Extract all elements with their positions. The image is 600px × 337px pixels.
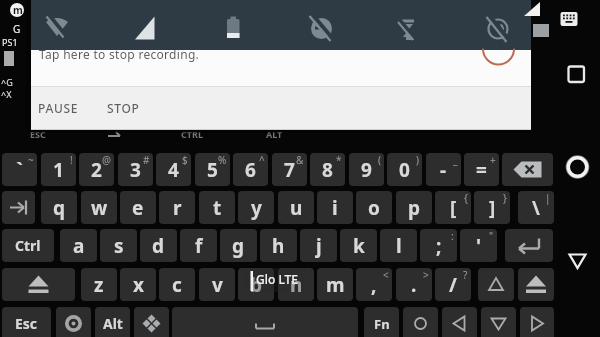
- button[interactable]: [478, 268, 514, 301]
- button[interactable]: \: [518, 191, 554, 224]
- button[interactable]: [172, 307, 358, 337]
- button[interactable]: [: [435, 191, 471, 224]
- button[interactable]: 8: [310, 153, 345, 186]
- button[interactable]: 7: [272, 153, 307, 186]
- button[interactable]: 9: [349, 153, 384, 186]
- staticText: ': [476, 233, 482, 259]
- staticText: #: [143, 153, 150, 167]
- button[interactable]: [505, 229, 553, 262]
- button[interactable]: u: [278, 191, 314, 224]
- staticText: z: [94, 272, 104, 298]
- staticText: CTRL: [181, 128, 203, 140]
- button[interactable]: 6: [233, 153, 268, 186]
- button[interactable]: y: [238, 191, 274, 224]
- button[interactable]: d: [140, 229, 177, 262]
- button[interactable]: /: [435, 268, 471, 301]
- button[interactable]: Ctrl: [2, 229, 54, 262]
- button[interactable]: n: [278, 268, 314, 301]
- staticText: o: [368, 195, 380, 221]
- button[interactable]: [2, 191, 35, 224]
- button[interactable]: o: [356, 191, 392, 224]
- button[interactable]: 0: [387, 153, 422, 186]
- button[interactable]: q: [41, 191, 77, 224]
- staticText: {: [464, 191, 468, 205]
- staticText: \: [532, 195, 540, 221]
- button[interactable]: Alt: [95, 307, 130, 337]
- button[interactable]: s: [100, 229, 137, 262]
- staticText: (: [378, 153, 381, 167]
- staticText: +: [490, 153, 496, 167]
- button[interactable]: v: [199, 268, 235, 301]
- button[interactable]: m: [317, 268, 353, 301]
- button[interactable]: g: [220, 229, 257, 262]
- button[interactable]: x: [120, 268, 156, 301]
- button[interactable]: Esc: [2, 307, 51, 337]
- button[interactable]: 1: [41, 153, 76, 186]
- button[interactable]: [560, 58, 594, 92]
- button[interactable]: =: [464, 153, 499, 186]
- button[interactable]: b: [238, 268, 274, 301]
- staticText: |: [545, 191, 551, 205]
- button[interactable]: 2: [79, 153, 114, 186]
- button[interactable]: a: [60, 229, 97, 262]
- button[interactable]: p: [396, 191, 432, 224]
- button[interactable]: k: [340, 229, 377, 262]
- staticText: 5: [207, 157, 218, 183]
- button[interactable]: ;: [420, 229, 457, 262]
- button[interactable]: 4: [156, 153, 191, 186]
- staticText: Ctrl: [15, 236, 41, 255]
- staticText: $: [182, 153, 188, 167]
- button[interactable]: [502, 153, 553, 186]
- button[interactable]: Fn: [364, 307, 399, 337]
- button[interactable]: [520, 307, 554, 337]
- staticText: x: [133, 272, 144, 298]
- button[interactable]: j: [300, 229, 337, 262]
- staticText: ^X: [1, 88, 12, 100]
- button[interactable]: c: [159, 268, 195, 301]
- staticText: Glo LTE: [256, 271, 299, 287]
- staticText: &: [296, 153, 304, 167]
- button[interactable]: [556, 2, 592, 32]
- button[interactable]: ': [460, 229, 497, 262]
- button[interactable]: .: [396, 268, 432, 301]
- button[interactable]: 3: [118, 153, 153, 186]
- button[interactable]: t: [199, 191, 235, 224]
- staticText: 1: [53, 157, 64, 183]
- staticText: ,: [371, 272, 377, 298]
- button[interactable]: ]: [474, 191, 510, 224]
- staticText: g: [232, 233, 245, 259]
- button[interactable]: f: [180, 229, 217, 262]
- button[interactable]: [560, 244, 594, 278]
- staticText: %: [218, 153, 227, 167]
- button[interactable]: `: [2, 153, 37, 186]
- button[interactable]: [518, 268, 554, 301]
- staticText: _: [453, 153, 458, 167]
- button[interactable]: i: [317, 191, 353, 224]
- button[interactable]: [403, 307, 438, 337]
- staticText: 4: [168, 157, 179, 183]
- button[interactable]: [2, 268, 75, 301]
- button[interactable]: z: [81, 268, 117, 301]
- staticText: !: [70, 153, 73, 167]
- button[interactable]: [134, 307, 169, 337]
- button[interactable]: h: [260, 229, 297, 262]
- staticText: y: [251, 195, 262, 221]
- staticText: w: [91, 195, 108, 221]
- button[interactable]: r: [159, 191, 195, 224]
- button[interactable]: [442, 307, 477, 337]
- button[interactable]: e: [120, 191, 156, 224]
- button[interactable]: [56, 307, 91, 337]
- staticText: k: [353, 233, 365, 259]
- button[interactable]: w: [81, 191, 117, 224]
- button[interactable]: ,: [356, 268, 392, 301]
- button[interactable]: l: [380, 229, 417, 262]
- button[interactable]: STOP: [99, 95, 147, 121]
- button[interactable]: 5: [195, 153, 230, 186]
- button[interactable]: [31, 50, 531, 86]
- button[interactable]: PAUSE: [30, 95, 86, 121]
- button[interactable]: -: [426, 153, 461, 186]
- staticText: ;: [436, 233, 442, 259]
- button[interactable]: [481, 307, 516, 337]
- button[interactable]: [560, 154, 594, 188]
- staticText: ESC: [30, 128, 46, 140]
